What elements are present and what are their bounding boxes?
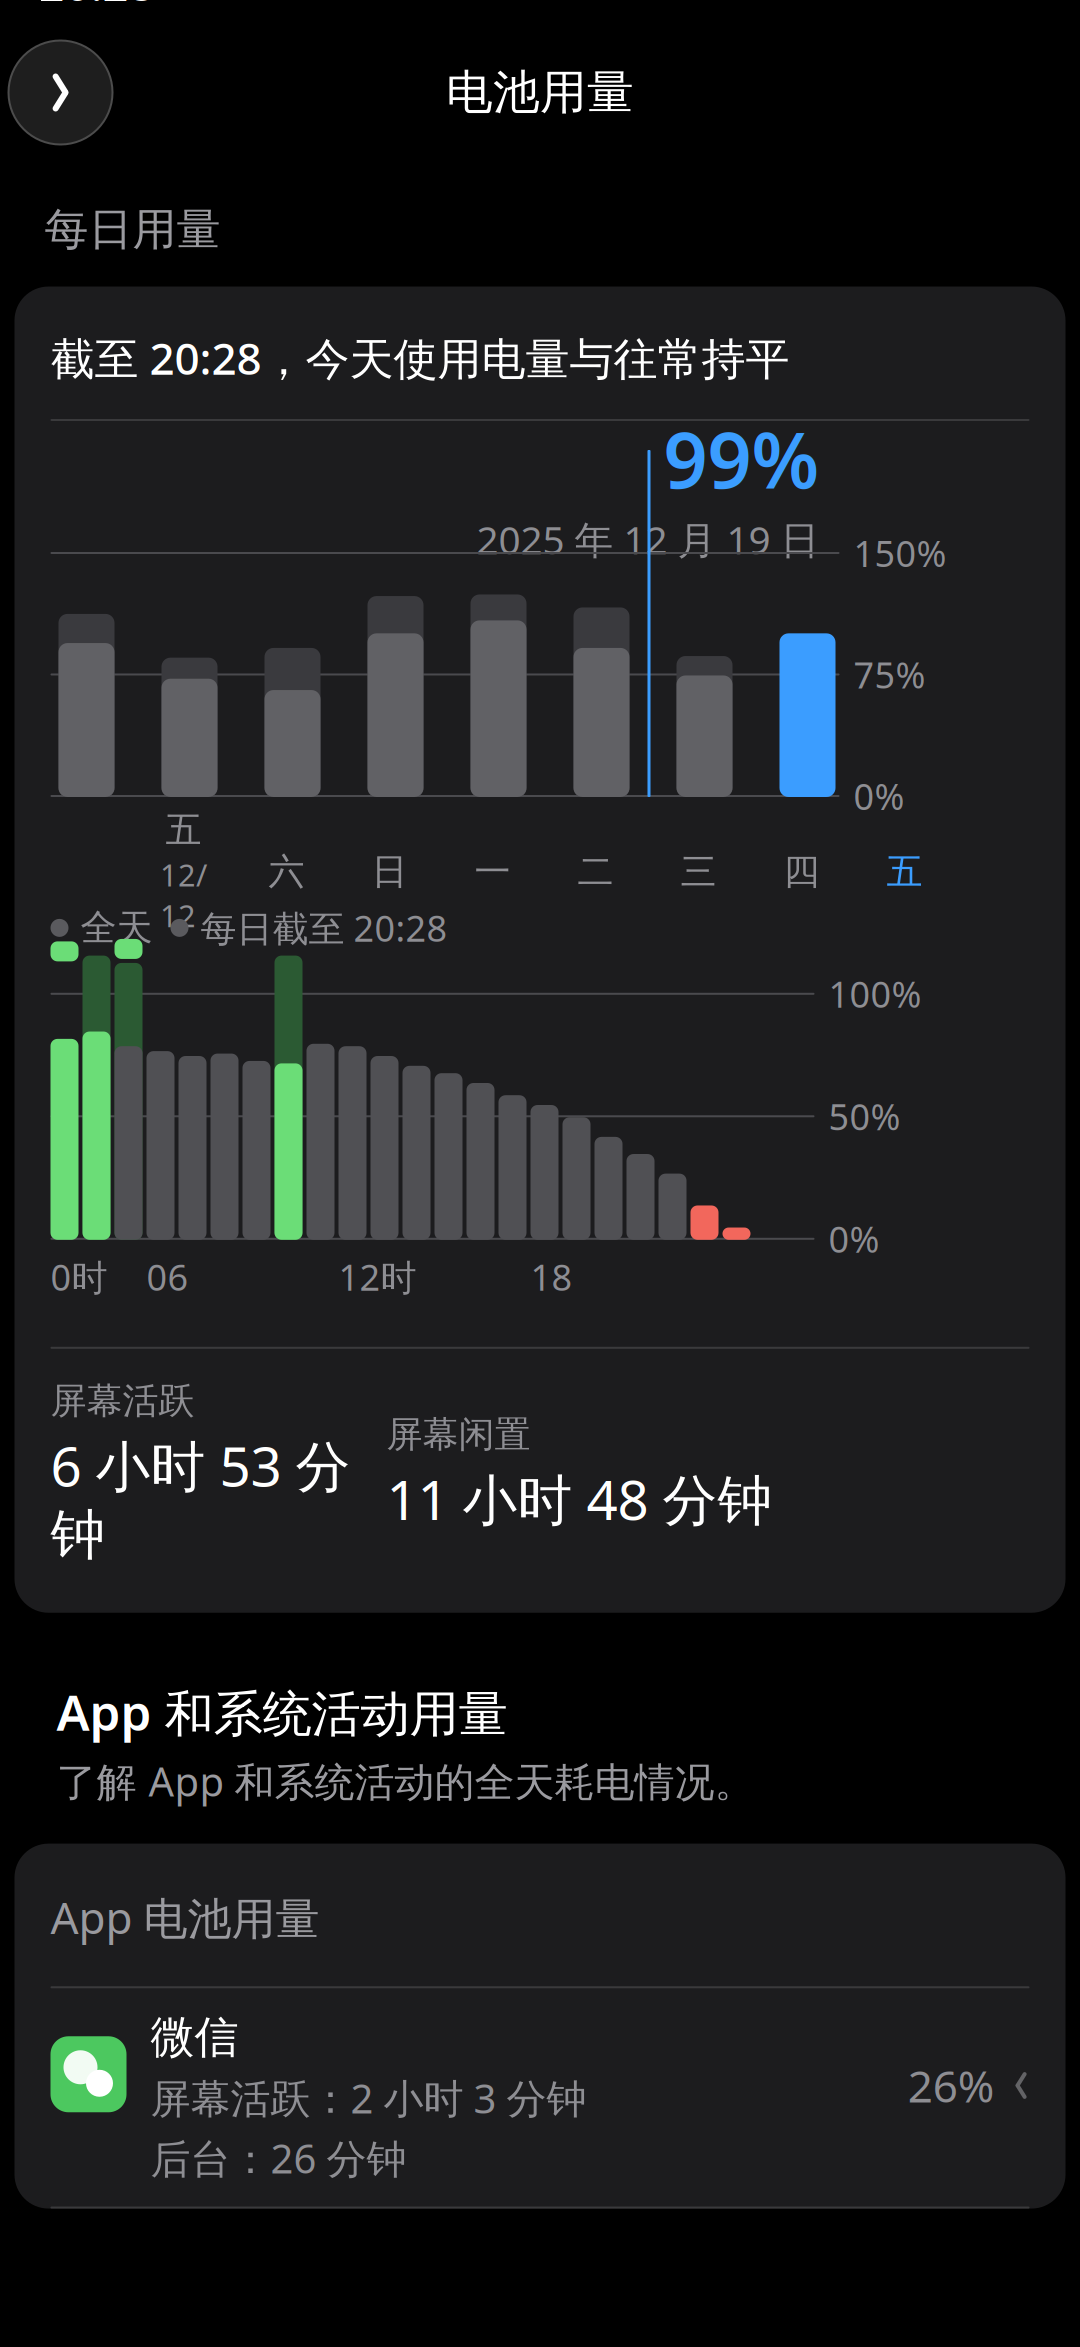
- staticText: 一: [474, 850, 510, 894]
- staticText: 四: [783, 850, 819, 894]
- staticText: 150%: [853, 529, 946, 577]
- staticText: 了解 App 和系统活动的全天耗电情况。: [56, 1754, 754, 1808]
- staticText: 12/12: [160, 854, 207, 936]
- staticText: 六: [268, 850, 304, 894]
- staticText: 二: [577, 850, 613, 894]
- staticText: 26%: [908, 2056, 995, 2115]
- staticText: 截至 20:28，今天使用电量与往常持平: [50, 328, 789, 387]
- staticText: 全天: [80, 906, 152, 950]
- staticText: 18: [530, 1253, 572, 1301]
- staticText: 06: [146, 1253, 188, 1301]
- staticText: 三: [680, 850, 716, 894]
- staticText: 屏幕闲置: [386, 1412, 530, 1457]
- button[interactable]: 返回: [8, 40, 112, 144]
- staticText: 0%: [828, 1215, 879, 1263]
- staticText: 99%: [663, 407, 819, 510]
- staticText: 微信: [150, 2010, 238, 2064]
- staticText: 每日用量: [44, 202, 220, 256]
- staticText: 每日截至 20:28: [200, 904, 447, 952]
- staticText: 屏幕活跃: [50, 1379, 194, 1423]
- staticText: App 和系统活动用量: [56, 1679, 507, 1744]
- button[interactable]: 微信: [50, 1988, 1029, 2207]
- staticText: 75%: [853, 651, 925, 698]
- staticText: 电池用量: [446, 64, 634, 121]
- staticText: 12时: [338, 1253, 416, 1301]
- staticText: 0时: [50, 1253, 107, 1301]
- staticText: 五: [165, 808, 201, 852]
- staticText: 后台：26 分钟: [150, 2131, 406, 2184]
- staticText: 100%: [828, 970, 921, 1018]
- staticText: 20:28: [38, 0, 154, 14]
- staticText: 11 小时 48 分钟: [386, 1463, 772, 1535]
- staticText: 五: [886, 850, 922, 894]
- staticText: App 电池用量: [50, 1888, 319, 1946]
- staticText: 2025 年 12 月 19 日: [476, 514, 819, 565]
- staticText: 6 小时 53 分钟: [50, 1429, 350, 1569]
- staticText: 0%: [853, 772, 904, 820]
- staticText: 日: [371, 850, 407, 894]
- staticText: 50%: [828, 1092, 900, 1140]
- staticText: 屏幕活跃：2 小时 3 分钟: [150, 2071, 586, 2124]
